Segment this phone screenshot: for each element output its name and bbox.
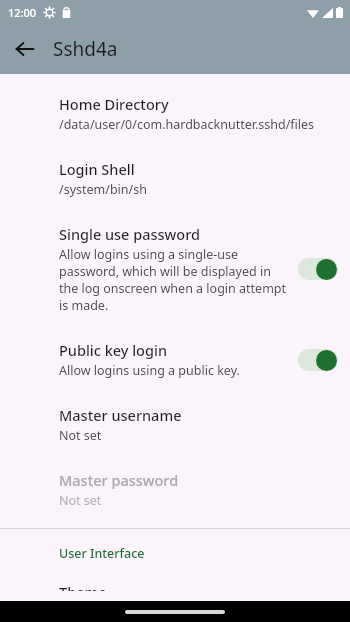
button[interactable]: Master username xyxy=(0,392,350,457)
staticText: 12:00 xyxy=(8,5,37,20)
button[interactable]: Toggle Public key login xyxy=(298,345,350,375)
staticText: Master username xyxy=(59,405,182,425)
button[interactable]: Back xyxy=(6,30,44,68)
staticText: Allow logins using a single-use password… xyxy=(59,246,290,314)
staticText: Single use password xyxy=(59,224,200,244)
staticText: Home Directory xyxy=(59,94,169,114)
staticText: Sshd4a xyxy=(53,36,118,62)
staticText: Public key login xyxy=(59,340,167,360)
staticText: /data/user/0/com.hardbacknutter.sshd/fil… xyxy=(59,116,315,133)
staticText: Allow logins using a public key. xyxy=(59,362,240,379)
staticText: /system/bin/sh xyxy=(59,181,147,198)
button[interactable]: Public key login xyxy=(0,327,350,392)
staticText: User Interface xyxy=(59,545,145,562)
button[interactable]: Home Directory xyxy=(0,81,350,146)
button[interactable]: Master password xyxy=(0,457,350,522)
button[interactable]: Toggle Single use password xyxy=(298,254,350,284)
staticText: Login Shell xyxy=(59,159,135,179)
staticText: Not set xyxy=(59,427,102,444)
staticText: Theme xyxy=(59,582,107,591)
button[interactable]: Login Shell xyxy=(0,146,350,211)
staticText: Master password xyxy=(59,470,179,490)
staticText: Not set xyxy=(59,492,102,509)
button[interactable]: Theme xyxy=(0,578,350,601)
button[interactable]: Single use password xyxy=(0,211,350,327)
